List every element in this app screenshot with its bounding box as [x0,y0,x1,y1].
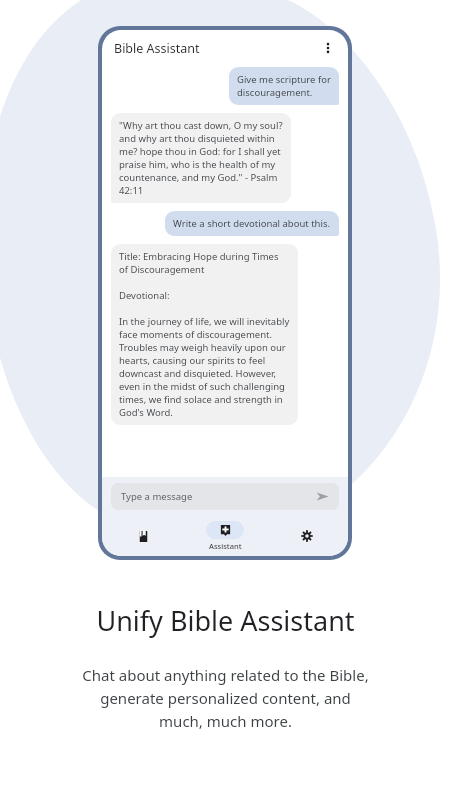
staticText: Title: Embracing Hope during Times of Di… [119,250,290,419]
other: Send [316,490,329,503]
staticText: Bible Assistant [114,40,200,57]
staticText: Assistant [209,541,242,551]
staticText: Type a message [121,490,193,503]
staticText: Write a short devotional about this. [173,217,331,230]
button[interactable]: Give me scripture for discouragement. [229,67,339,105]
button[interactable]: Write a short devotional about this. [165,211,339,236]
button[interactable]: Type a message [111,483,339,510]
button[interactable]: Assistant [184,521,266,551]
staticText: Chat about anything related to the Bible… [82,665,369,731]
button[interactable]: Title: Embracing Hope during Times of Di… [111,244,298,425]
staticText: Give me scripture for discouragement. [237,73,331,99]
button[interactable]: More options [318,38,338,58]
staticText: "Why art thou cast down, O my soul? and … [119,119,283,197]
button[interactable]: Bible [102,527,184,545]
button[interactable]: "Why art thou cast down, O my soul? and … [111,113,291,203]
staticText: Unify Bible Assistant [96,602,355,639]
button[interactable]: Settings [266,527,348,545]
